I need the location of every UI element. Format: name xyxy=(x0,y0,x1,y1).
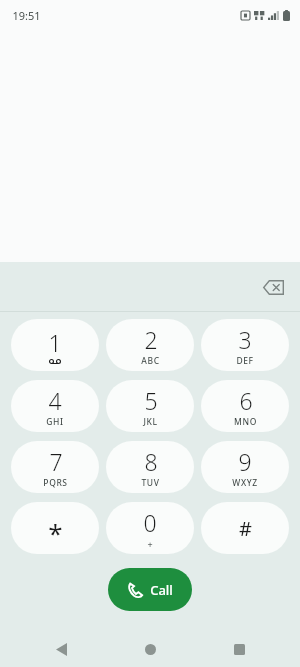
button[interactable]: Backspace xyxy=(253,267,293,307)
button[interactable]: 0 xyxy=(106,502,194,554)
staticText: 7 xyxy=(49,446,63,477)
staticText: MNO xyxy=(234,416,257,428)
staticText: JKL xyxy=(143,416,158,428)
staticText: 19:51 xyxy=(12,8,41,23)
button[interactable]: Call xyxy=(108,568,192,611)
staticText: TUV xyxy=(141,477,160,489)
button[interactable]: 4 xyxy=(11,380,99,432)
staticText: DEF xyxy=(236,355,254,367)
button[interactable]: # xyxy=(201,502,289,554)
button[interactable]: 6 xyxy=(201,380,289,432)
staticText: 5 xyxy=(144,385,158,416)
button[interactable]: Home xyxy=(133,632,167,666)
button[interactable]: Back xyxy=(44,632,78,666)
staticText: 6 xyxy=(239,385,253,416)
button[interactable]: * xyxy=(11,502,99,554)
staticText: + xyxy=(147,538,153,550)
staticText: * xyxy=(48,515,63,541)
staticText: WXYZ xyxy=(232,477,258,489)
staticText: 3 xyxy=(238,324,252,355)
button[interactable]: 3 xyxy=(201,319,289,371)
staticText: GHI xyxy=(46,416,64,428)
staticText: # xyxy=(239,515,252,541)
staticText: 9 xyxy=(238,446,252,477)
staticText: PQRS xyxy=(43,477,68,489)
staticText: 4 xyxy=(48,385,62,416)
staticText: 0 xyxy=(143,507,157,538)
staticText: 1 xyxy=(48,327,62,358)
staticText: 2 xyxy=(144,324,158,355)
button[interactable]: 9 xyxy=(201,441,289,493)
button[interactable]: Recents xyxy=(222,632,256,666)
button[interactable]: 1 xyxy=(11,319,99,371)
staticText: Call xyxy=(150,581,173,599)
button[interactable]: 7 xyxy=(11,441,99,493)
button[interactable]: 5 xyxy=(106,380,194,432)
staticText: 8 xyxy=(144,446,158,477)
staticText: ABC xyxy=(141,355,160,367)
button[interactable]: 8 xyxy=(106,441,194,493)
button[interactable]: 2 xyxy=(106,319,194,371)
